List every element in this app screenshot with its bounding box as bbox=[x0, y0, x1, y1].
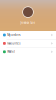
button[interactable]: Favourites bbox=[0, 39, 56, 48]
staticText: Wallet bbox=[7, 50, 15, 53]
button[interactable]: My orders bbox=[0, 31, 56, 39]
button[interactable]: Wallet bbox=[0, 48, 56, 56]
staticText: Jessica Lee bbox=[20, 21, 35, 24]
staticText: Favourites bbox=[7, 42, 20, 45]
staticText: My orders bbox=[7, 33, 20, 37]
